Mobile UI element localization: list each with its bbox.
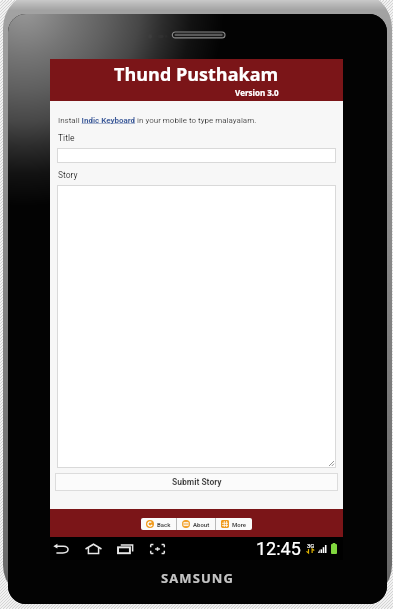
staticText: SAMSUNG <box>161 569 235 587</box>
staticText: Thund Pusthakam <box>114 62 279 87</box>
staticText: 3G <box>307 542 315 549</box>
button[interactable]: More <box>216 518 252 530</box>
button[interactable]: Back <box>141 518 176 530</box>
staticText: Back <box>157 521 171 528</box>
staticText: More <box>232 521 247 528</box>
button[interactable] <box>57 185 336 468</box>
staticText: Version 3.0 <box>235 87 279 98</box>
button[interactable]: Back <box>45 537 77 560</box>
staticText: Title <box>58 133 75 143</box>
button[interactable]: Submit Story <box>55 473 338 491</box>
button[interactable]: Recent apps <box>109 537 141 560</box>
staticText: 12:45 <box>256 538 301 559</box>
button[interactable] <box>57 148 336 163</box>
staticText: Install Indic Keyboard in your mobile to… <box>58 116 257 125</box>
button[interactable]: About <box>177 518 215 530</box>
button[interactable]: Home <box>77 537 109 560</box>
staticText: About <box>193 521 210 528</box>
staticText: Story <box>58 170 78 180</box>
button[interactable]: Screenshot <box>141 537 173 560</box>
staticText: Submit Story <box>172 477 222 487</box>
